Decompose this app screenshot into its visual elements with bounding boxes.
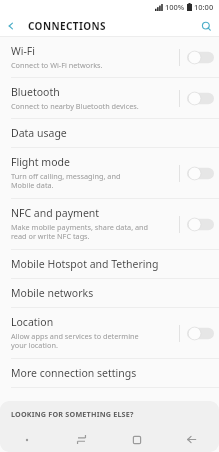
- button[interactable]: Wi-Fi: [0, 37, 219, 77]
- staticText: Data usage: [11, 126, 67, 140]
- staticText: Allow apps and services to determine you…: [11, 331, 139, 351]
- staticText: Flight mode: [11, 155, 70, 169]
- staticText: NFC and payment: [11, 206, 100, 220]
- button[interactable]: NFC and payment: [0, 199, 219, 249]
- staticText: Wi-Fi: [11, 44, 36, 58]
- staticText: 10:00: [194, 2, 214, 12]
- button[interactable]: Toggle: [187, 50, 214, 65]
- staticText: CONNECTIONS: [28, 19, 107, 33]
- staticText: Mobile Hotspot and Tethering: [11, 257, 159, 271]
- button[interactable]: Location: [0, 308, 219, 358]
- staticText: Mobile networks: [11, 286, 94, 300]
- button[interactable]: Search: [195, 15, 217, 37]
- button[interactable]: Mobile Hotspot and Tethering: [0, 250, 219, 278]
- button[interactable]: Bluetooth: [0, 78, 219, 118]
- button[interactable]: Mobile networks: [0, 279, 219, 307]
- button[interactable]: More connection settings: [0, 359, 219, 387]
- staticText: Make mobile payments, share data, and re…: [11, 222, 149, 242]
- button[interactable]: Back: [0, 15, 22, 37]
- button[interactable]: Toggle: [187, 217, 214, 232]
- staticText: LOOKING FOR SOMETHING ELSE?: [11, 409, 134, 419]
- button[interactable]: Data usage: [0, 119, 219, 147]
- staticText: Bluetooth: [11, 85, 60, 99]
- button[interactable]: LOOKING FOR SOMETHING ELSE?: [0, 401, 219, 427]
- staticText: Connect to Wi-Fi networks.: [11, 60, 103, 70]
- button[interactable]: Toggle: [187, 91, 214, 106]
- staticText: Turn off calling, messaging, and Mobile …: [11, 171, 121, 191]
- button[interactable]: Flight mode: [0, 148, 219, 198]
- button[interactable]: Back: [164, 427, 219, 452]
- button[interactable]: Home: [109, 427, 164, 452]
- staticText: Location: [11, 315, 54, 329]
- button[interactable]: Toggle: [187, 166, 214, 181]
- staticText: Connect to nearby Bluetooth devices.: [11, 101, 139, 111]
- button[interactable]: Recents: [54, 427, 109, 452]
- staticText: More connection settings: [11, 366, 137, 380]
- staticText: 100%: [165, 2, 185, 12]
- button[interactable]: Assistant: [0, 427, 54, 452]
- button[interactable]: Toggle: [187, 326, 214, 341]
